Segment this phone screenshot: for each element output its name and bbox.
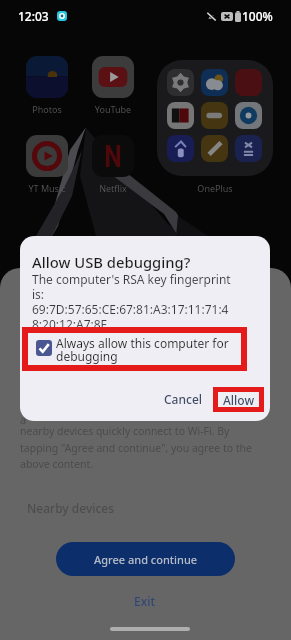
button[interactable]: Netflix bbox=[92, 135, 134, 177]
staticText: OnePlus bbox=[157, 182, 273, 194]
button[interactable]: Agree and continue bbox=[56, 542, 235, 576]
button[interactable]: Cancel bbox=[158, 387, 208, 411]
button[interactable]: Allow bbox=[213, 387, 264, 412]
other: No SIM bbox=[221, 12, 233, 21]
staticText: 100% bbox=[242, 8, 273, 24]
staticText: nearby devices quickly connect to Wi-Fi.… bbox=[20, 424, 253, 471]
other: Battery bbox=[235, 11, 241, 22]
button[interactable]: OnePlus folder bbox=[157, 60, 273, 176]
staticText: Cancel bbox=[164, 391, 203, 407]
staticText: Exit bbox=[134, 593, 156, 609]
button[interactable]: Always allow this computer for debugging bbox=[34, 334, 246, 368]
staticText: Allow bbox=[223, 392, 255, 408]
button[interactable]: YouTube bbox=[92, 56, 134, 98]
other: Muted bbox=[206, 11, 217, 22]
staticText: Agree and continue bbox=[94, 552, 198, 567]
staticText: Allow USB debugging? bbox=[32, 252, 191, 272]
staticText: Always allow this computer for debugging bbox=[56, 335, 229, 365]
staticText: Netflix bbox=[92, 182, 134, 194]
staticText: 12:03 bbox=[18, 8, 49, 24]
staticText: Photos bbox=[26, 103, 68, 115]
button[interactable]: Photos bbox=[26, 56, 68, 98]
button[interactable]: Exit bbox=[115, 590, 175, 612]
staticText: YT Music bbox=[26, 182, 68, 194]
staticText: YouTube bbox=[92, 103, 134, 115]
button[interactable]: YT Music bbox=[26, 135, 68, 177]
staticText: The computer's RSA key fingerprint is: 6… bbox=[32, 271, 231, 332]
staticText: Nearby devices bbox=[27, 500, 115, 516]
staticText: a bbox=[20, 412, 27, 427]
